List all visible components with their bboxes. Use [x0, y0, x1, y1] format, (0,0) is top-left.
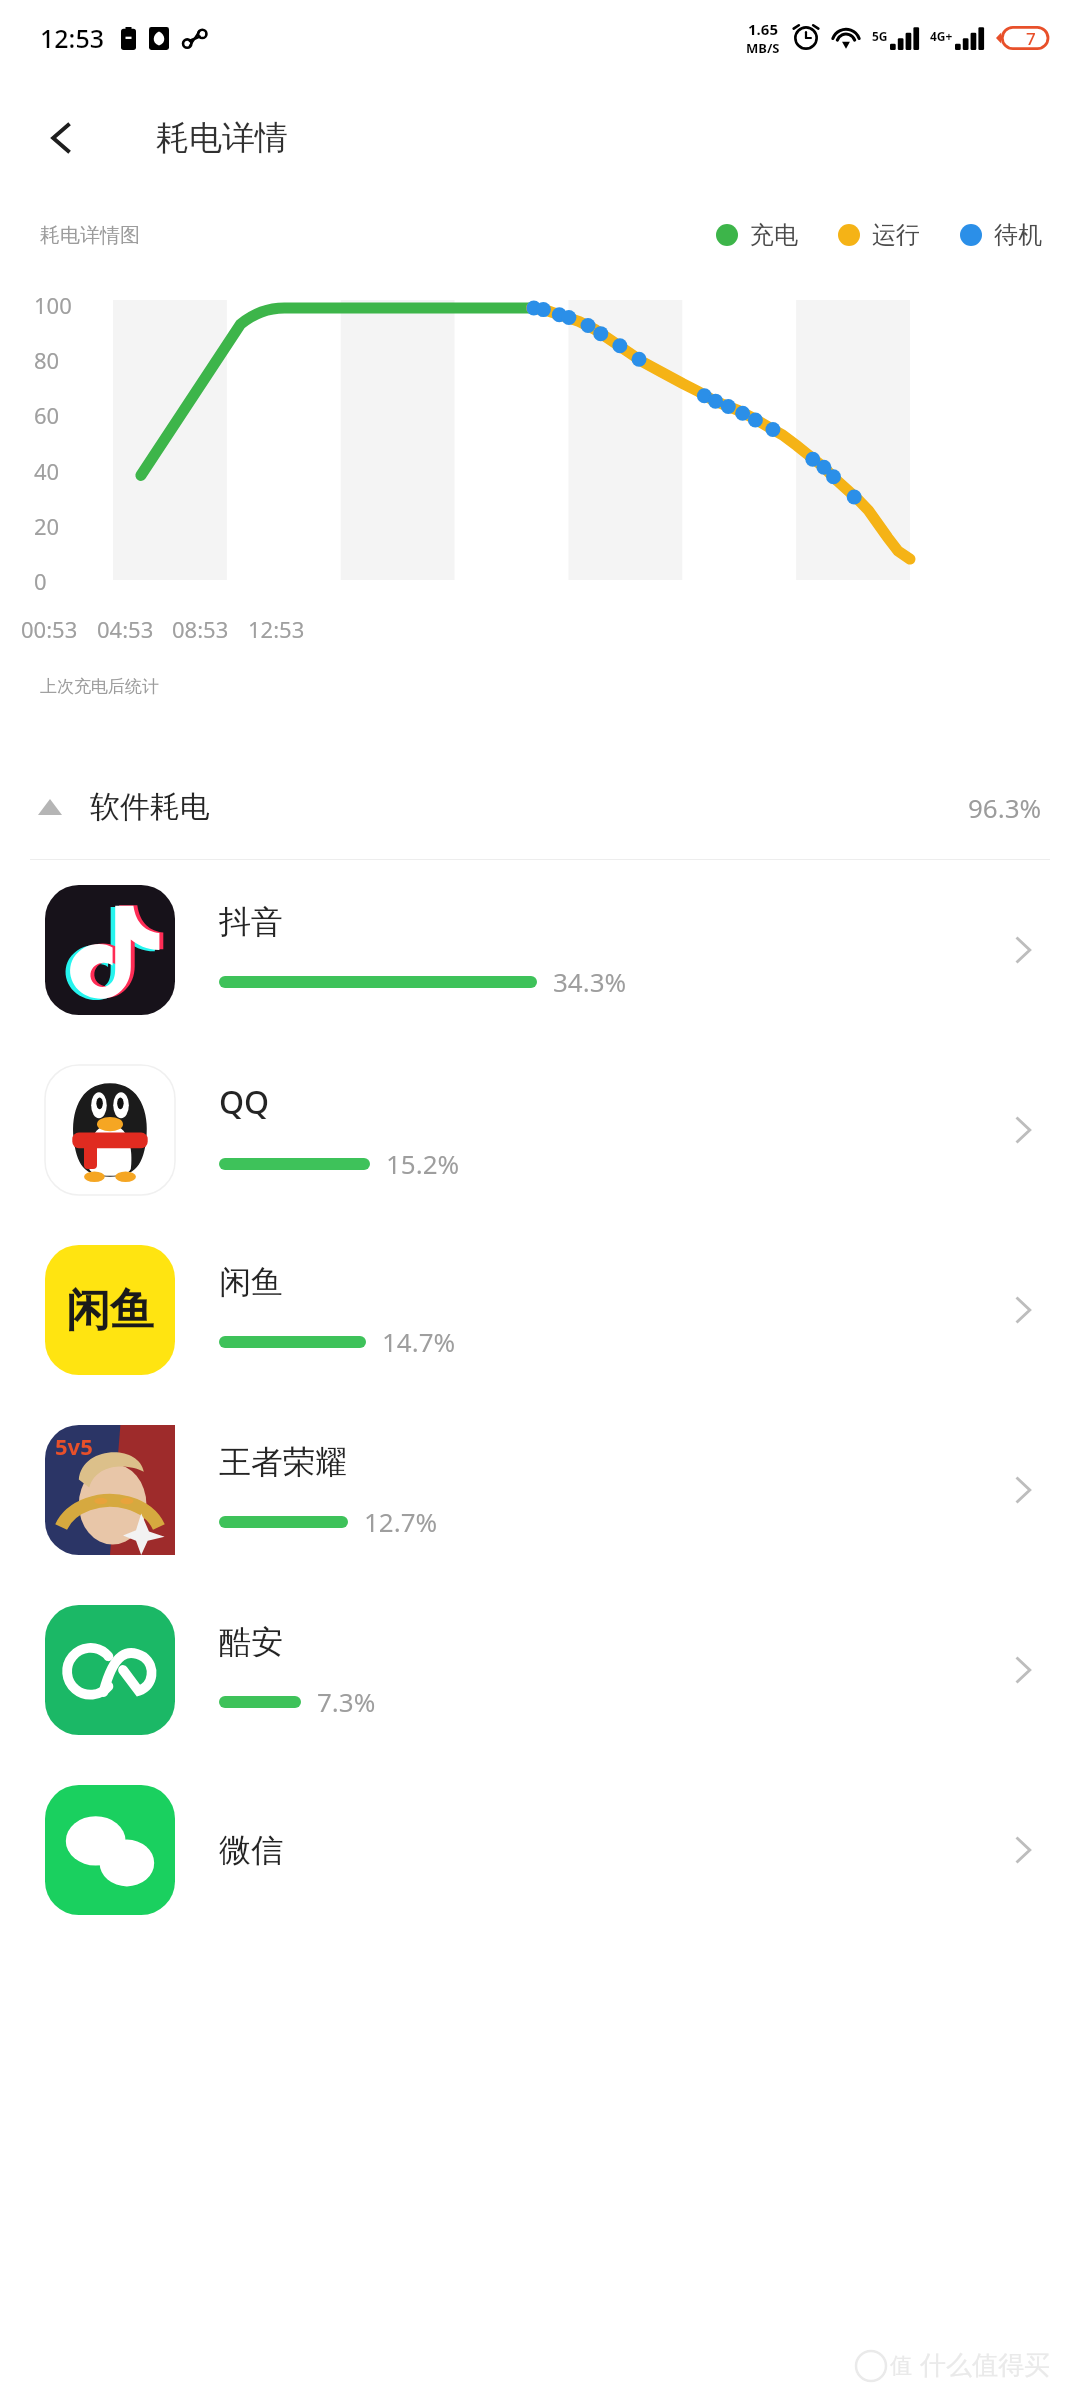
other: 查看详情	[1006, 1473, 1040, 1507]
staticText: 5G	[872, 28, 888, 44]
staticText: QQ	[219, 1080, 270, 1124]
other: 查看详情	[1006, 1833, 1040, 1867]
other: 查看详情	[1006, 1113, 1040, 1147]
staticText: 14.7%	[382, 1324, 456, 1359]
staticText: 20	[34, 511, 60, 541]
staticText: MB/S	[746, 39, 780, 57]
staticText: 上次充电后统计	[40, 676, 159, 697]
staticText: 抖音	[219, 902, 283, 942]
staticText: 耗电详情	[156, 117, 288, 159]
staticText: 60	[34, 400, 60, 430]
staticText: 闲鱼	[219, 1262, 283, 1302]
staticText: 酷安	[219, 1622, 283, 1662]
staticText: 耗电详情图	[40, 223, 140, 248]
staticText: 15.2%	[386, 1146, 460, 1181]
other: 查看详情	[1006, 1653, 1040, 1687]
button[interactable]: 抖音	[0, 860, 1080, 1040]
staticText: 12.7%	[364, 1504, 438, 1539]
button[interactable]: 酷安	[0, 1580, 1080, 1760]
staticText: 待机	[994, 220, 1042, 250]
staticText: 96.3%	[968, 790, 1042, 825]
staticText: 1.65	[748, 19, 778, 39]
staticText: 0	[34, 566, 47, 596]
staticText: 34.3%	[553, 964, 627, 999]
other: 查看详情	[1006, 1293, 1040, 1327]
button[interactable]: 闲鱼	[0, 1220, 1080, 1400]
button[interactable]: 返回	[22, 98, 102, 178]
staticText: 00:53	[21, 614, 78, 644]
staticText: 什么值得买	[920, 2349, 1050, 2382]
staticText: 微信	[219, 1830, 283, 1870]
button[interactable]: QQ	[0, 1040, 1080, 1220]
button[interactable]: 软件耗电	[0, 755, 1080, 859]
staticText: 12:53	[40, 21, 105, 55]
staticText: 软件耗电	[90, 788, 210, 826]
staticText: 运行	[872, 220, 920, 250]
other: 查看详情	[1006, 933, 1040, 967]
staticText: 7.3%	[317, 1684, 376, 1719]
staticText: 王者荣耀	[219, 1442, 347, 1482]
staticText: 充电	[750, 220, 798, 250]
staticText: 04:53	[97, 614, 154, 644]
staticText: 值	[890, 2352, 912, 2380]
staticText: 80	[34, 345, 60, 375]
staticText: 12:53	[248, 614, 305, 644]
staticText: 5v5	[55, 1431, 93, 1461]
button[interactable]: 微信	[0, 1760, 1080, 1940]
staticText: 100	[34, 290, 72, 320]
button[interactable]: 5v5	[0, 1400, 1080, 1580]
staticText: 40	[34, 456, 60, 486]
staticText: 闲鱼	[66, 1283, 154, 1338]
staticText: 08:53	[172, 614, 229, 644]
staticText: 4G+	[930, 28, 953, 44]
staticText: 7	[1026, 27, 1036, 50]
